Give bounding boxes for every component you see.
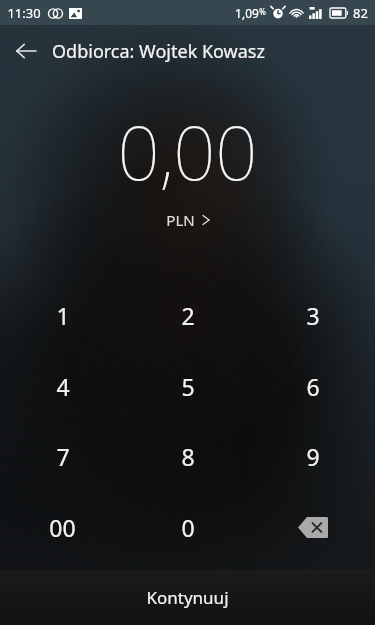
button[interactable]: 9 bbox=[250, 428, 375, 484]
staticText: 0,00 bbox=[117, 101, 258, 202]
button[interactable]: PLN bbox=[158, 208, 218, 232]
staticText: Kontynuuj bbox=[146, 586, 229, 609]
button[interactable]: 2 bbox=[125, 287, 250, 343]
staticText: 7 bbox=[56, 441, 70, 472]
button[interactable]: Back bbox=[0, 25, 52, 77]
staticText: 1 bbox=[56, 300, 70, 331]
staticText: PLN bbox=[166, 210, 195, 230]
staticText: 4 bbox=[56, 371, 70, 402]
staticText: 9 bbox=[306, 441, 320, 472]
staticText: % bbox=[259, 6, 266, 17]
staticText: 6 bbox=[306, 371, 320, 402]
button[interactable]: 0 bbox=[125, 499, 250, 555]
button[interactable]: Backspace bbox=[250, 499, 375, 555]
staticText: 5 bbox=[181, 371, 195, 402]
button[interactable]: 6 bbox=[250, 358, 375, 414]
staticText: 00 bbox=[49, 512, 76, 543]
staticText: 1,09 bbox=[235, 5, 259, 21]
button[interactable]: 00 bbox=[0, 499, 125, 555]
staticText: 2 bbox=[181, 300, 195, 331]
button[interactable]: 4 bbox=[0, 358, 125, 414]
staticText: 3 bbox=[306, 300, 320, 331]
button[interactable]: 5 bbox=[125, 358, 250, 414]
button[interactable]: 3 bbox=[250, 287, 375, 343]
staticText: 8 bbox=[181, 441, 195, 472]
staticText: 82 bbox=[353, 4, 368, 22]
button[interactable]: Kontynuuj bbox=[0, 570, 375, 625]
staticText: Odbiorca: Wojtek Kowasz bbox=[52, 39, 265, 64]
staticText: 11:30 bbox=[7, 4, 41, 22]
button[interactable]: 8 bbox=[125, 428, 250, 484]
staticText: 0 bbox=[181, 512, 195, 543]
button[interactable]: 1 bbox=[0, 287, 125, 343]
button[interactable]: 7 bbox=[0, 428, 125, 484]
